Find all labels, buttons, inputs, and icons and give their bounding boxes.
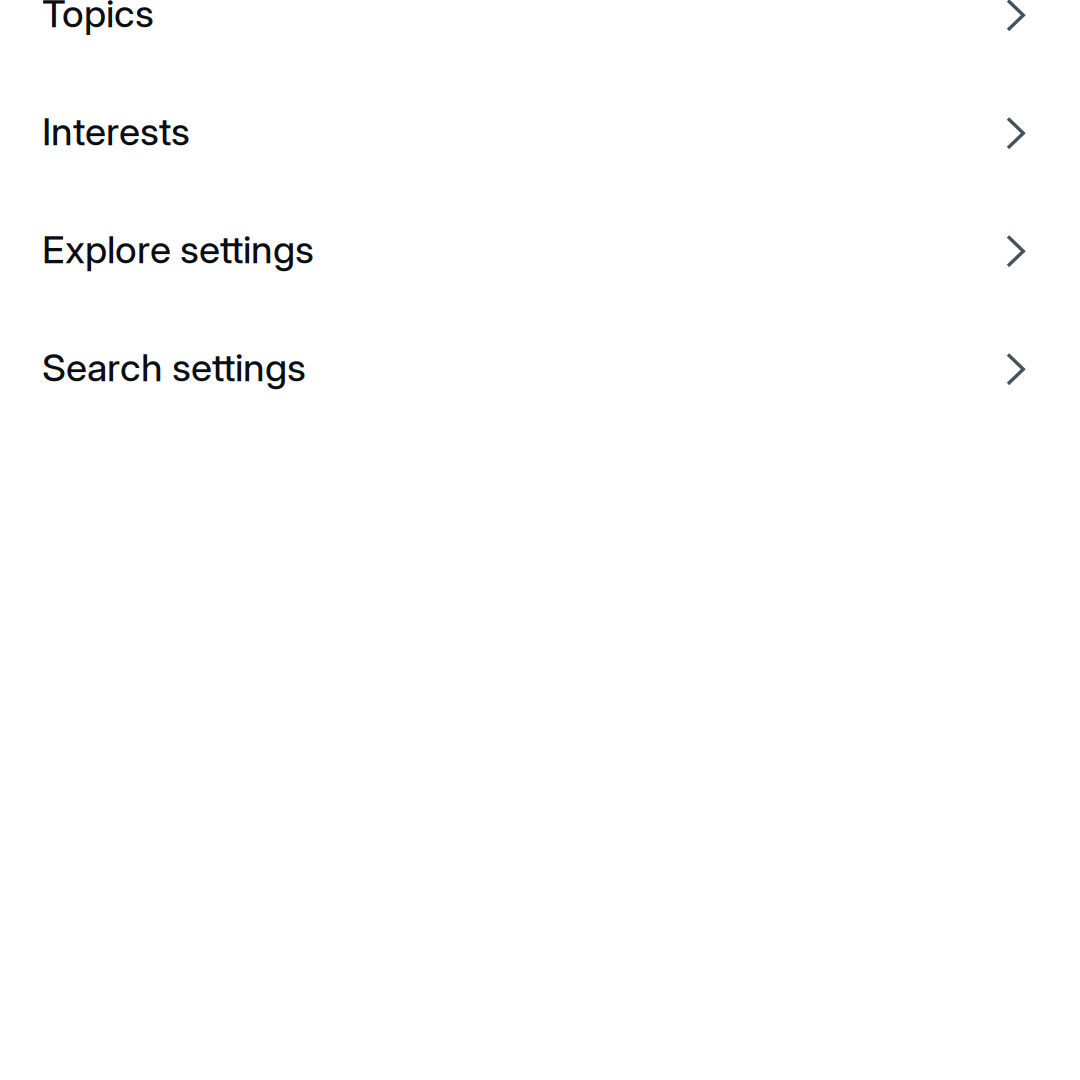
staticText: Explore settings bbox=[42, 226, 314, 272]
staticText: Topics bbox=[42, 0, 154, 36]
button[interactable]: Interests bbox=[0, 74, 1080, 192]
staticText: Interests bbox=[42, 108, 190, 154]
button[interactable]: Explore settings bbox=[0, 192, 1080, 310]
button[interactable]: Topics bbox=[0, 0, 1080, 74]
staticText: Search settings bbox=[42, 344, 306, 390]
button[interactable]: Search settings bbox=[0, 310, 1080, 428]
